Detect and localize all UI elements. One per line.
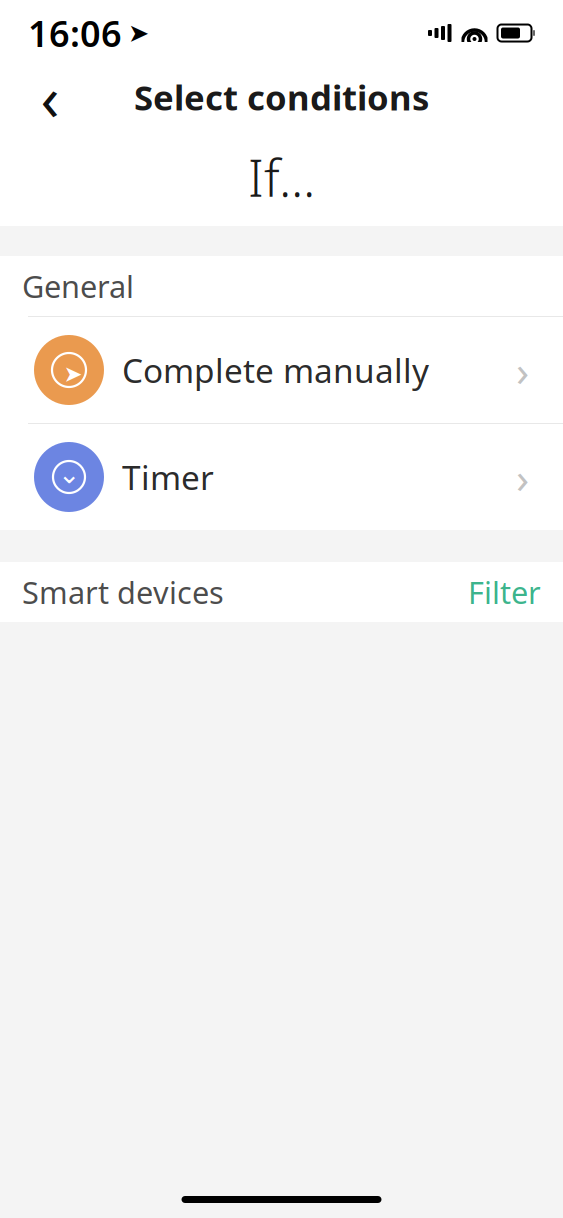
staticText: ‹ (40, 56, 59, 138)
staticText: Filter (468, 572, 541, 612)
staticText: ⌄ (58, 459, 80, 489)
button[interactable]: Back (22, 69, 78, 125)
staticText: ➤ (128, 19, 149, 47)
staticText: ➤ (63, 361, 82, 387)
staticText: Timer (122, 455, 214, 499)
button[interactable]: ⌄ (0, 424, 563, 530)
staticText: › (516, 449, 529, 505)
staticText: 16:06 (28, 9, 122, 57)
staticText: Smart devices (22, 572, 224, 612)
button[interactable]: Filter (448, 562, 541, 622)
staticText: If... (248, 143, 315, 211)
staticText: Select conditions (134, 74, 429, 120)
button[interactable]: ➤ (0, 317, 563, 423)
staticText: › (516, 342, 529, 398)
staticText: General (22, 266, 134, 306)
staticText: Complete manually (122, 348, 429, 392)
